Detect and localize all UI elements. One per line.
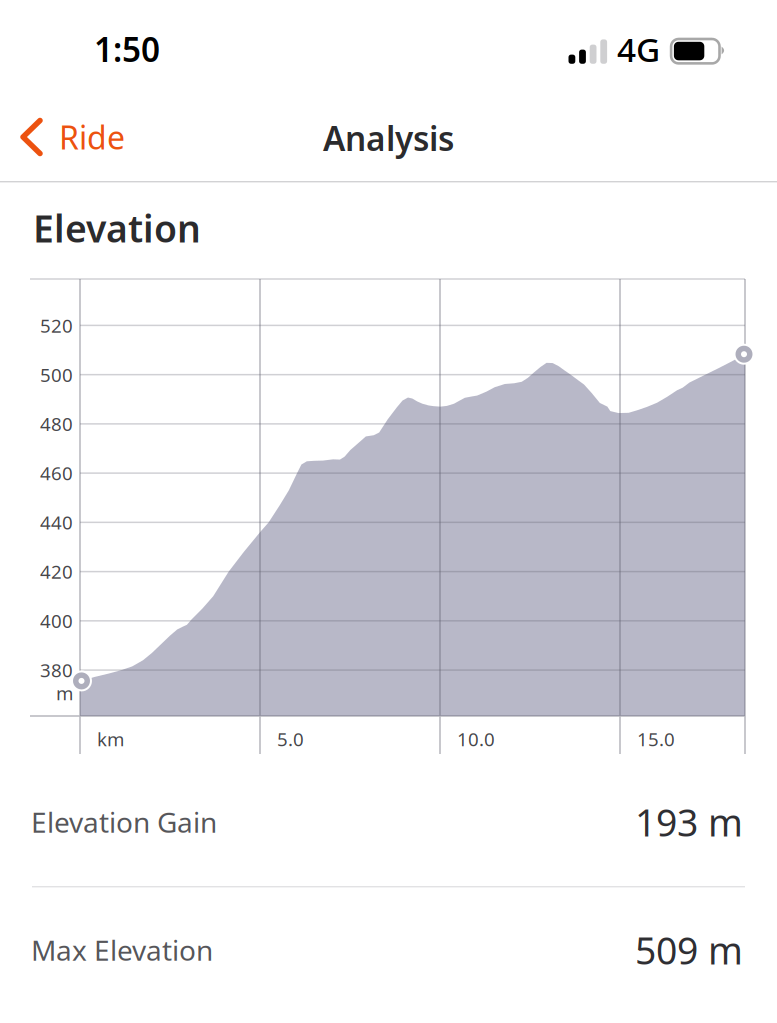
staticText: 520: [40, 313, 73, 338]
staticText: 509 m: [635, 925, 743, 975]
staticText: 1:50: [94, 27, 160, 71]
staticText: m: [56, 681, 73, 705]
staticText: 400: [40, 608, 73, 633]
staticText: 4G: [617, 27, 660, 71]
button[interactable]: Ride: [10, 106, 155, 168]
staticText: Ride: [59, 116, 125, 158]
staticText: 440: [40, 510, 73, 535]
staticText: 5.0: [277, 727, 304, 751]
staticText: 380: [40, 658, 73, 682]
staticText: 193 m: [635, 797, 743, 847]
staticText: 10.0: [457, 727, 495, 751]
staticText: 480: [40, 411, 73, 436]
staticText: Max Elevation: [31, 931, 213, 969]
staticText: km: [97, 727, 124, 751]
staticText: 460: [40, 461, 73, 485]
staticText: 420: [40, 559, 73, 584]
staticText: Elevation Gain: [31, 803, 217, 841]
staticText: Analysis: [323, 116, 454, 160]
staticText: 15.0: [637, 727, 675, 751]
staticText: 500: [40, 362, 73, 387]
staticText: Elevation: [33, 203, 201, 253]
